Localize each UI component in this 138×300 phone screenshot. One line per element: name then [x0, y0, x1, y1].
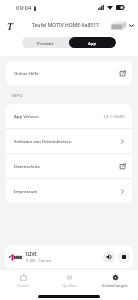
- button[interactable]: App Version: [6, 104, 132, 128]
- staticText: App: [88, 40, 97, 46]
- button[interactable]: Stopp: [118, 251, 130, 263]
- staticText: INFO: [12, 93, 23, 98]
- button[interactable]: Software von Drittanbietern: [6, 129, 132, 153]
- button[interactable]: Datenschutz: [6, 154, 132, 178]
- button[interactable]: Gerät wechseln: [110, 20, 134, 31]
- staticText: Einstellungen: [102, 283, 128, 288]
- button[interactable]: Einstellungen: [92, 270, 138, 291]
- button[interactable]: Produkt: [22, 37, 69, 48]
- staticText: Impressum: [14, 188, 38, 194]
- staticText: T: [7, 20, 13, 32]
- button[interactable]: Online-Hilfe: [6, 61, 132, 85]
- button[interactable]: Impressum: [6, 179, 132, 203]
- button[interactable]: Quellen: [46, 270, 92, 291]
- staticText: 09:04: [16, 4, 32, 12]
- staticText: Produkt: [37, 40, 54, 46]
- staticText: 1LIVE: [25, 251, 37, 257]
- button[interactable]: 1LIVE: [5, 245, 133, 268]
- staticText: Software von Drittanbietern: [14, 138, 72, 144]
- button[interactable]: Home: [0, 270, 46, 291]
- button[interactable]: Lautstärke: [103, 251, 115, 263]
- staticText: 1LIVE - Tarven: [25, 258, 52, 263]
- staticText: Online-Hilfe: [14, 70, 39, 76]
- button[interactable]: App: [69, 37, 116, 48]
- staticText: Quellen: [62, 283, 77, 288]
- staticText: App Version: [14, 113, 39, 119]
- staticText: 1.4.1 (3649): [103, 114, 125, 119]
- staticText: Home: [17, 283, 29, 288]
- staticText: Datenschutz: [14, 163, 40, 169]
- staticText: Teufel MOTIV HOME-6a8517: [32, 22, 99, 29]
